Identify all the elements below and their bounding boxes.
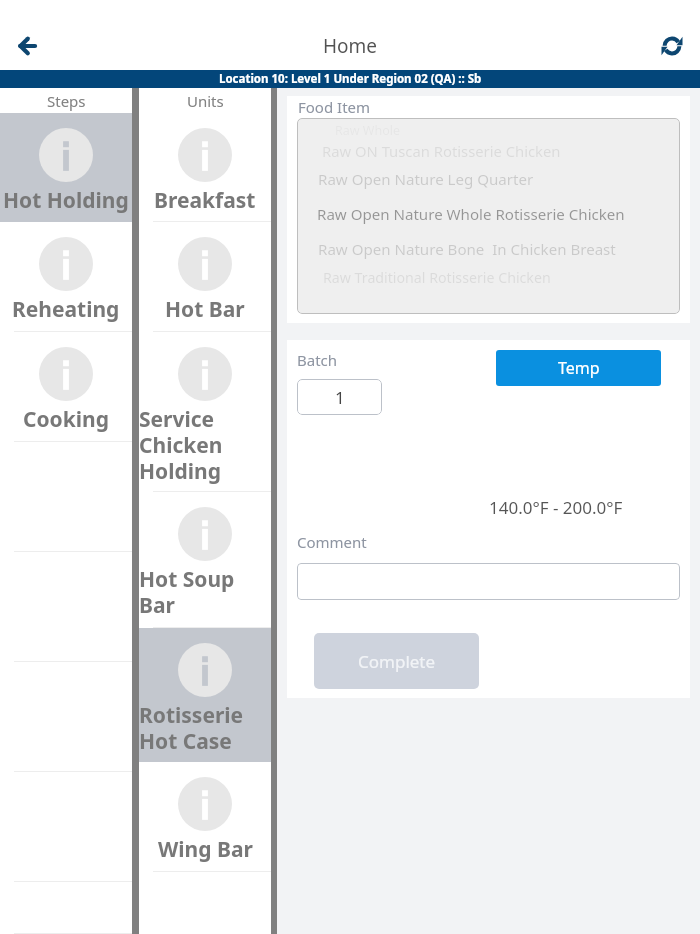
staticText: 1 <box>335 386 345 409</box>
button[interactable]: Rotisserie Hot Case <box>139 628 271 762</box>
button[interactable]: Hot Soup Bar <box>139 492 271 628</box>
staticText: Hot Holding <box>3 186 129 215</box>
button[interactable]: 1 <box>297 379 382 415</box>
staticText: Raw Open Nature Whole Rotisserie Chicken <box>317 204 625 225</box>
staticText: Raw Open Nature Leg Quarter <box>318 169 534 190</box>
button[interactable]: Cooking <box>0 332 132 442</box>
button[interactable]: Wing Bar <box>139 762 271 872</box>
staticText: Cooking <box>23 405 109 434</box>
button[interactable]: Hot Bar <box>139 222 271 332</box>
button[interactable]: Back <box>7 26 47 66</box>
staticText: Raw Traditional Rotisserie Chicken <box>323 268 551 287</box>
button[interactable] <box>297 563 680 600</box>
staticText: Comment <box>297 532 367 552</box>
button[interactable]: Temp <box>496 350 661 386</box>
staticText: Steps <box>47 91 86 111</box>
staticText: Temp <box>558 357 600 379</box>
staticText: Complete <box>358 650 436 673</box>
button[interactable]: Service Chicken Holding <box>139 332 271 492</box>
staticText: Hot Soup Bar <box>139 565 271 620</box>
button[interactable]: Hot Holding <box>0 113 132 222</box>
staticText: Service Chicken Holding <box>139 405 271 486</box>
staticText: 140.0°F - 200.0°F <box>489 496 623 519</box>
staticText: Breakfast <box>154 186 256 215</box>
staticText: Rotisserie Hot Case <box>139 701 271 756</box>
staticText: Food Item <box>298 97 371 117</box>
staticText: Wing Bar <box>158 835 253 864</box>
staticText: Home <box>323 33 378 59</box>
staticText: Units <box>187 91 224 111</box>
staticText: Hot Bar <box>165 295 245 324</box>
button[interactable]: Breakfast <box>139 113 271 222</box>
staticText: Batch <box>297 350 338 370</box>
staticText: Raw ON Tuscan Rotisserie Chicken <box>322 141 561 161</box>
button[interactable]: Refresh <box>652 26 692 66</box>
staticText: Location 10: Level 1 Under Region 02 (QA… <box>219 71 482 87</box>
staticText: Raw Open Nature Bone In Chicken Breast <box>318 239 616 260</box>
button[interactable]: Complete <box>314 633 479 689</box>
button[interactable]: Reheating <box>0 222 132 332</box>
staticText: Reheating <box>12 295 120 324</box>
